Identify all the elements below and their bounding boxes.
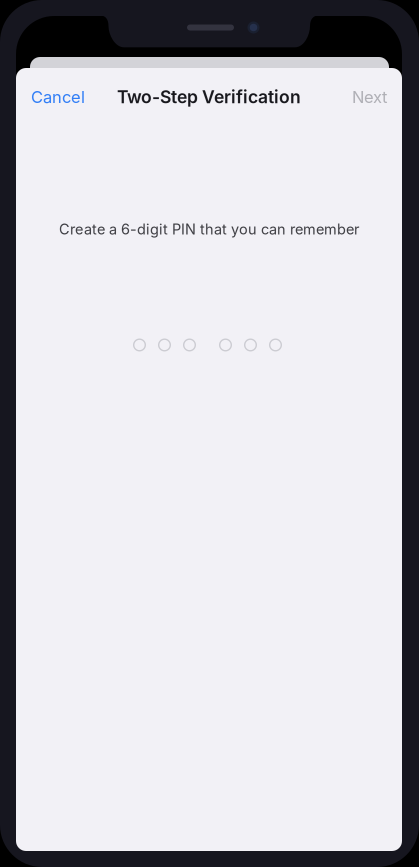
- button[interactable]: Next: [350, 76, 389, 118]
- staticText: Create a 6-digit PIN that you can rememb…: [59, 220, 359, 238]
- staticText: Cancel: [31, 87, 85, 107]
- staticText: Two-Step Verification: [117, 86, 301, 108]
- button[interactable]: Cancel: [29, 76, 87, 118]
- staticText: Next: [352, 87, 387, 107]
